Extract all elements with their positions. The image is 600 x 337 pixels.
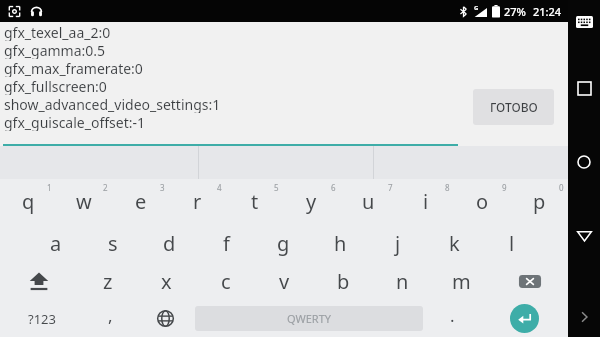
button[interactable]: Backspace [491, 262, 568, 300]
button[interactable]: Enter [480, 300, 568, 337]
staticText: 4 [217, 182, 222, 193]
staticText: m [452, 268, 471, 295]
staticText: j [395, 230, 401, 257]
staticText: 27% [504, 4, 526, 19]
button[interactable]: Expand [572, 305, 596, 329]
staticText: e [135, 188, 147, 215]
button[interactable]: ?123 [0, 300, 83, 337]
staticText: z [103, 268, 113, 295]
button[interactable]: m [432, 262, 491, 300]
staticText: 0 [559, 182, 564, 193]
button[interactable]: x [137, 262, 196, 300]
button[interactable]: w [56, 179, 112, 224]
button[interactable]: ГОТОВО [473, 89, 554, 125]
button[interactable]: e [112, 179, 169, 224]
button[interactable]: k [426, 224, 483, 262]
staticText: h [334, 230, 347, 257]
button[interactable]: QWERTY [195, 306, 423, 331]
staticText: v [279, 268, 290, 295]
staticText: g [277, 230, 290, 257]
staticText: 6 [331, 182, 336, 193]
staticText: 2 [103, 182, 108, 193]
button[interactable]: t [226, 179, 283, 224]
button[interactable]: s [84, 224, 141, 262]
staticText: x [161, 268, 172, 295]
button[interactable]: Change language [138, 300, 193, 337]
button[interactable]: Recent apps [571, 75, 597, 101]
button[interactable]: g [255, 224, 312, 262]
staticText: p [533, 188, 546, 215]
button[interactable]: j [369, 224, 426, 262]
staticText: QWERTY [287, 311, 332, 326]
staticText: s [108, 230, 118, 257]
staticText: l [509, 230, 515, 257]
staticText: a [50, 230, 62, 257]
staticText: , [108, 304, 113, 327]
button[interactable]: a [27, 224, 84, 262]
button[interactable]: Back [571, 223, 597, 249]
button[interactable]: d [141, 224, 198, 262]
staticText: ?123 [28, 310, 56, 328]
staticText: gfx_guiscale_offset:-1 [4, 113, 145, 131]
button[interactable]: f [198, 224, 255, 262]
button[interactable]: Home [571, 149, 597, 175]
staticText: show_advanced_video_settings:1 [4, 95, 221, 113]
staticText: 21:24 [533, 4, 562, 19]
staticText: i [423, 188, 429, 215]
staticText: gfx_max_framerate:0 [4, 59, 143, 77]
staticText: 3 [160, 182, 165, 193]
staticText: y [306, 188, 317, 215]
staticText: q [22, 188, 35, 215]
staticText: G [474, 4, 479, 12]
button[interactable]: h [312, 224, 369, 262]
button[interactable]: b [314, 262, 373, 300]
button[interactable]: o [454, 179, 511, 224]
button[interactable]: , [83, 300, 138, 337]
button[interactable]: v [255, 262, 314, 300]
button[interactable]: n [373, 262, 432, 300]
staticText: gfx_fullscreen:0 [4, 77, 107, 95]
staticText: gfx_gamma:0.5 [4, 41, 106, 59]
button[interactable]: u [340, 179, 397, 224]
button[interactable]: Keyboard [573, 11, 595, 33]
button[interactable]: l [483, 224, 540, 262]
button[interactable]: p [511, 179, 568, 224]
staticText: u [362, 188, 375, 215]
staticText: d [163, 230, 176, 257]
staticText: 9 [502, 182, 507, 193]
button[interactable]: q [0, 179, 56, 224]
staticText: o [476, 188, 489, 215]
staticText: 1 [47, 182, 52, 193]
staticText: t [251, 188, 259, 215]
staticText: 7 [388, 182, 393, 193]
button[interactable]: c [196, 262, 255, 300]
button[interactable]: y [283, 179, 340, 224]
button[interactable]: . [425, 300, 480, 337]
staticText: b [337, 268, 350, 295]
button[interactable]: i [397, 179, 454, 224]
button[interactable]: r [169, 179, 226, 224]
staticText: 5 [274, 182, 279, 193]
staticText: k [449, 230, 460, 257]
staticText: r [193, 188, 202, 215]
staticText: w [76, 188, 92, 215]
staticText: c [221, 268, 231, 295]
staticText: . [450, 304, 455, 327]
staticText: gfx_texel_aa_2:0 [4, 23, 111, 41]
staticText: f [223, 230, 230, 257]
button[interactable]: z [78, 262, 137, 300]
staticText: 8 [445, 182, 450, 193]
staticText: ГОТОВО [490, 99, 538, 115]
staticText: n [396, 268, 409, 295]
button[interactable]: Shift [0, 262, 78, 300]
